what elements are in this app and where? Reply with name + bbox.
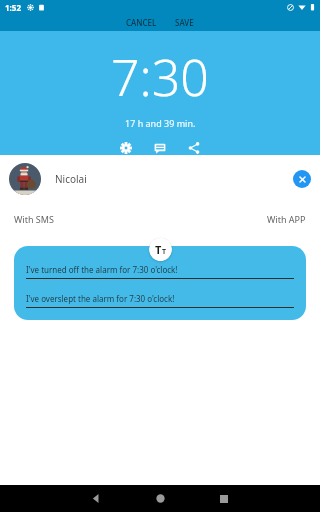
button[interactable]: Change text size [149,238,172,261]
button[interactable]: Messages [146,140,174,155]
staticText: 17 h and 39 min. [125,117,196,129]
staticText: I've turned off the alarm for 7:30 o'clo… [26,264,178,275]
button[interactable]: Settings [112,140,140,155]
staticText: With SMS [14,213,54,225]
button[interactable]: SAVE [171,16,198,29]
button[interactable]: Back [78,485,114,512]
button[interactable]: Remove contact [293,170,311,188]
staticText: SAVE [175,17,194,28]
button[interactable]: Recent apps [206,485,242,512]
button[interactable]: I've turned off the alarm for 7:30 o'clo… [26,264,294,279]
staticText: With APP [267,213,306,225]
staticText: I've overslept the alarm for 7:30 o'cloc… [26,293,175,304]
staticText: Nicolai [55,172,87,186]
button[interactable]: I've overslept the alarm for 7:30 o'cloc… [26,293,294,308]
staticText: CANCEL [126,17,157,28]
button[interactable]: Contact avatar [9,163,41,195]
button[interactable]: Home [142,485,178,512]
staticText: T [162,247,167,257]
button[interactable]: CANCEL [122,16,161,29]
staticText: 7:30 [111,43,209,111]
staticText: 1:52 [5,2,21,13]
staticText: T [155,242,162,257]
button[interactable]: Share [180,140,208,155]
